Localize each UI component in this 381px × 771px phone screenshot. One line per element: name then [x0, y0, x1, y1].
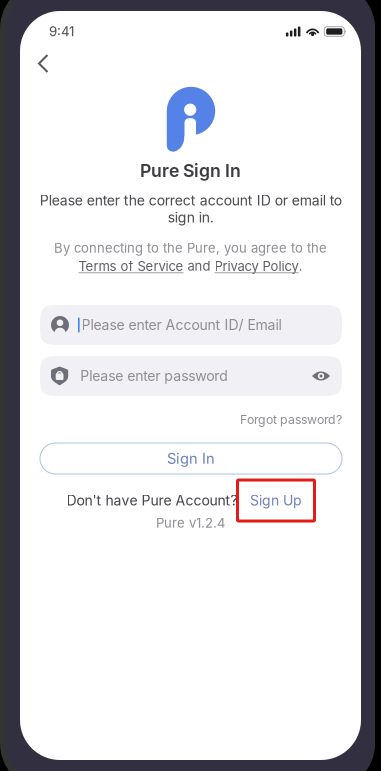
button[interactable]: Sign In	[40, 443, 342, 474]
staticText: Forgot password?	[240, 412, 342, 427]
button[interactable]: Forgot password?	[240, 412, 342, 427]
staticText: Privacy Policy	[214, 258, 298, 274]
staticText: Pure v1.2.4	[156, 515, 225, 531]
staticText: Please enter Account ID/ Email	[82, 316, 282, 333]
button[interactable]: Terms of Service	[78, 258, 183, 273]
staticText: Terms of Service	[78, 258, 183, 274]
button[interactable]: Please enter password	[40, 356, 342, 396]
staticText: Please enter password	[80, 367, 228, 384]
staticText: Please enter the correct account ID or e…	[39, 192, 341, 226]
button[interactable]: Back	[31, 47, 57, 81]
button[interactable]: Please enter Account ID/ Email	[40, 305, 342, 345]
staticText: Sign In	[167, 450, 215, 467]
button[interactable]: Privacy Policy	[214, 258, 298, 273]
staticText: Pure Sign In	[140, 160, 241, 181]
button[interactable]: Sign Up	[237, 480, 314, 521]
staticText: and	[183, 258, 214, 274]
staticText: Sign Up	[250, 492, 302, 509]
staticText: .	[298, 258, 302, 274]
staticText: Don't have Pure Account?	[66, 492, 237, 509]
staticText: By connecting to the Pure, you agree to …	[54, 240, 327, 256]
staticText: 9:41	[49, 23, 74, 39]
